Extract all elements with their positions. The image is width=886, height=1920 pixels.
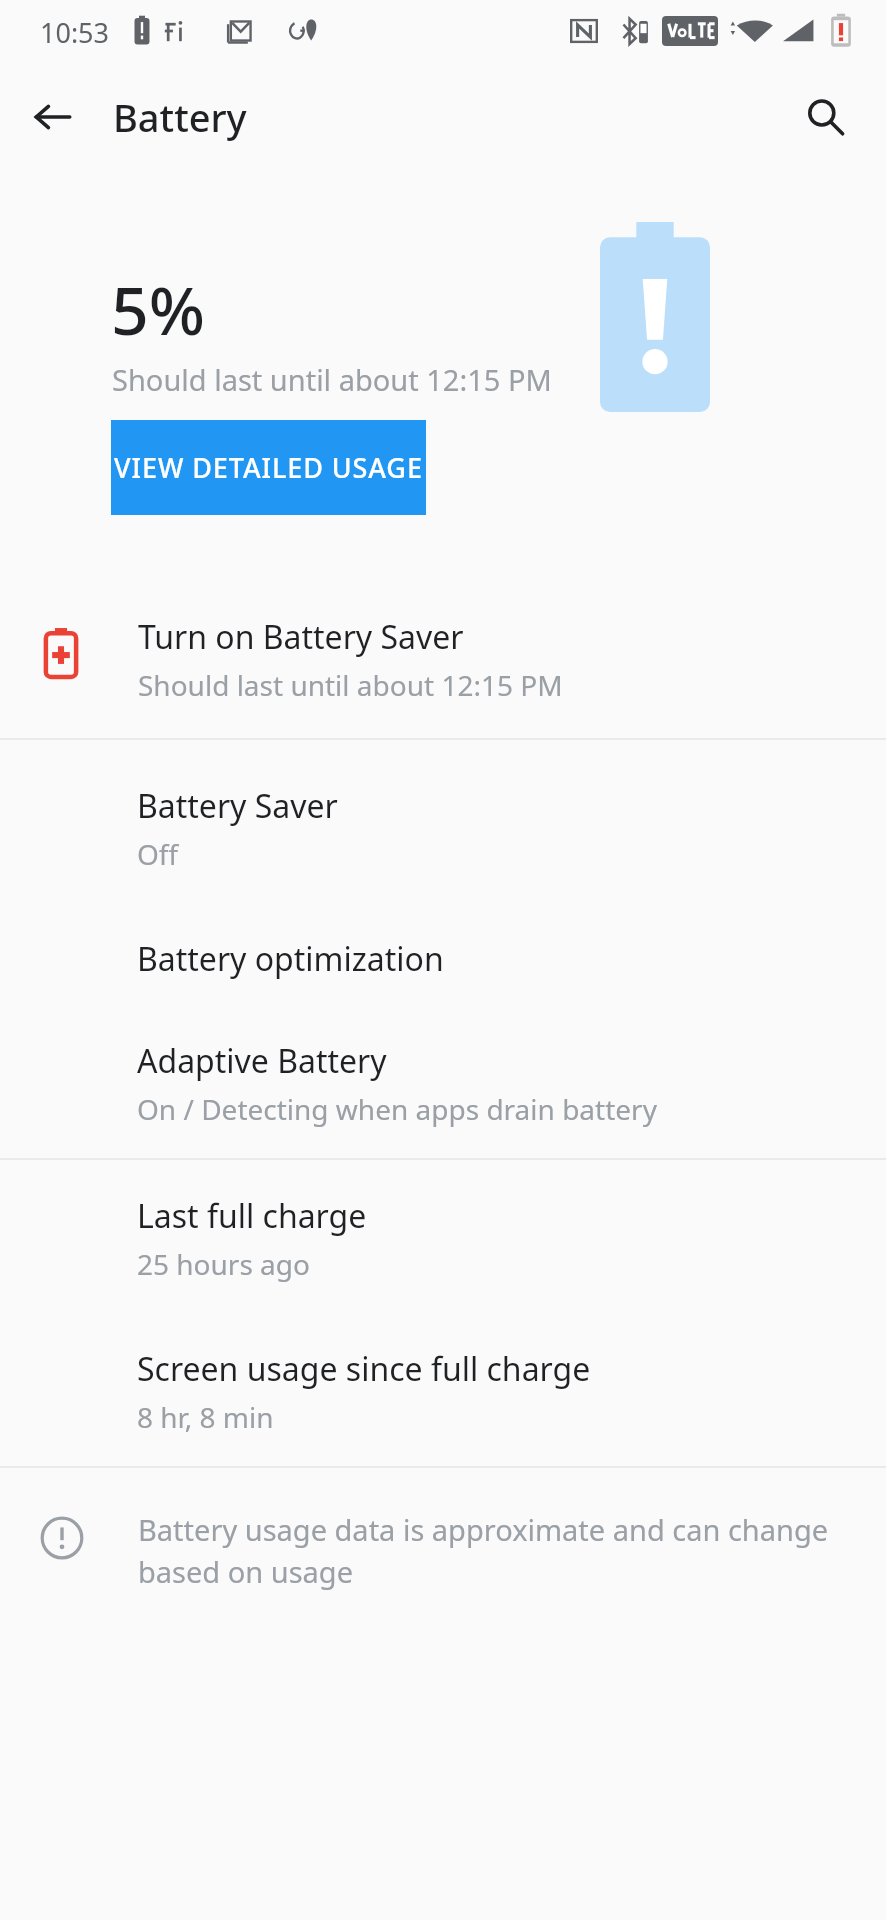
button[interactable]: Back (20, 84, 86, 150)
button[interactable]: Search (790, 82, 860, 152)
staticText: 8 hr, 8 min (137, 1398, 274, 1436)
staticText: 5% (111, 264, 205, 354)
button[interactable]: Battery Saver (0, 740, 886, 903)
staticText: Turn on Battery Saver (138, 615, 464, 659)
staticText: Should last until about 12:15 PM (112, 360, 552, 399)
staticText: Should last until about 12:15 PM (138, 666, 563, 704)
staticText: 10:53 (40, 14, 110, 51)
staticText: VIEW DETAILED USAGE (114, 449, 423, 486)
staticText: Battery usage data is approximate and ca… (138, 1510, 836, 1591)
button[interactable]: Adaptive Battery (0, 1015, 886, 1158)
staticText: Battery (113, 91, 247, 143)
staticText: On / Detecting when apps drain battery (137, 1090, 657, 1128)
staticText: Battery optimization (137, 937, 444, 981)
staticText: Adaptive Battery (137, 1039, 387, 1083)
staticText: Screen usage since full charge (137, 1347, 591, 1391)
button[interactable]: Battery optimization (0, 903, 886, 1015)
staticText: Battery Saver (137, 784, 338, 828)
button[interactable]: VIEW DETAILED USAGE (111, 420, 426, 515)
button[interactable]: Screen usage since full charge (0, 1313, 886, 1466)
staticText: Last full charge (137, 1194, 367, 1238)
staticText: Off (137, 835, 179, 873)
staticText: 25 hours ago (137, 1245, 310, 1283)
button[interactable]: Last full charge (0, 1160, 886, 1313)
button[interactable]: Turn on Battery Saver (0, 605, 886, 738)
